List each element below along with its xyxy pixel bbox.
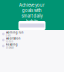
staticText: goals with	[22, 8, 42, 13]
staticText: habits	[26, 19, 38, 24]
staticText: smart daily	[21, 13, 42, 19]
button[interactable]: Morning run	[0, 31, 64, 37]
button[interactable]: Meditation	[0, 37, 64, 43]
staticText: 5 km	[6, 34, 11, 37]
staticText: 20 pages	[6, 46, 14, 49]
staticText: Reading	[6, 43, 18, 46]
staticText: Achieve your	[19, 2, 45, 8]
staticText: Meditation	[6, 37, 21, 40]
staticText: Morning run	[6, 31, 24, 34]
staticText: 10 min	[6, 40, 13, 43]
button[interactable]: Reading	[0, 43, 64, 49]
